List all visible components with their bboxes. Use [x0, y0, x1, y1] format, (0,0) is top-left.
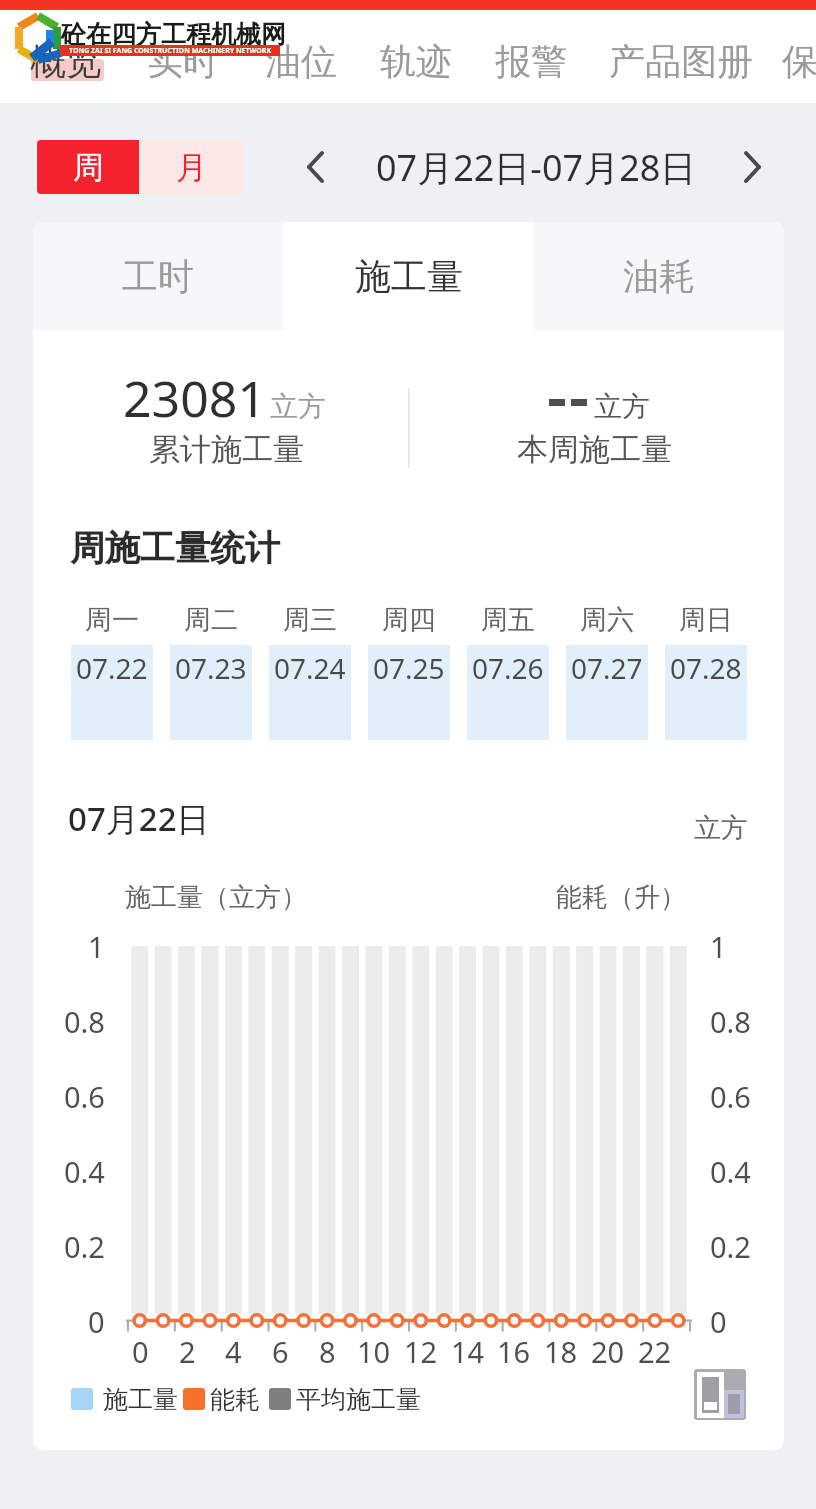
staticText: 能耗（升）: [556, 881, 686, 914]
staticText: 立方: [270, 389, 326, 424]
staticText: 立方: [594, 389, 650, 424]
staticText: 周施工量统计: [70, 526, 280, 570]
button[interactable]: [467, 645, 549, 740]
staticText: 施工量: [355, 254, 463, 299]
staticText: 23081: [123, 364, 266, 432]
staticText: 本周施工量: [517, 430, 672, 469]
staticText: 2: [179, 1332, 196, 1371]
button[interactable]: [269, 645, 351, 740]
staticText: 0.6: [64, 1077, 105, 1116]
staticText: 6: [272, 1332, 289, 1371]
staticText: 周: [73, 148, 104, 187]
staticText: 施工量: [103, 1384, 178, 1415]
button[interactable]: 周: [37, 140, 139, 194]
staticText: 8: [319, 1332, 336, 1371]
button[interactable]: [71, 645, 153, 740]
staticText: 0.4: [64, 1152, 105, 1191]
staticText: 07.24: [274, 649, 346, 687]
staticText: 立方: [694, 811, 748, 845]
staticText: 周三: [283, 603, 337, 637]
button[interactable]: 油耗: [534, 222, 784, 330]
staticText: 0.6: [710, 1077, 751, 1116]
staticText: 0.4: [710, 1152, 751, 1191]
staticText: 07.27: [571, 649, 643, 687]
staticText: 油耗: [623, 254, 695, 299]
staticText: 周五: [481, 603, 535, 637]
staticText: TONG ZAI SI FANG CONSTRUCTION MACHINERY …: [69, 46, 272, 56]
staticText: 10: [357, 1332, 391, 1371]
button[interactable]: [491, 40, 571, 82]
staticText: 20: [591, 1332, 625, 1371]
staticText: 概览: [30, 39, 102, 84]
staticText: 07月22日: [68, 796, 210, 841]
button[interactable]: [184, 1389, 284, 1415]
staticText: 1: [710, 927, 727, 966]
button[interactable]: [261, 40, 341, 82]
button[interactable]: 施工量: [283, 222, 534, 330]
button[interactable]: 月: [139, 140, 243, 194]
staticText: 16: [497, 1332, 531, 1371]
staticText: 周六: [580, 603, 634, 637]
staticText: 0.2: [64, 1227, 105, 1266]
staticText: 18: [544, 1332, 578, 1371]
button[interactable]: [302, 150, 330, 184]
staticText: 07.23: [175, 649, 247, 687]
staticText: 0.8: [710, 1002, 751, 1041]
staticText: 实时: [147, 39, 219, 84]
staticText: 1: [88, 927, 105, 966]
staticText: 0: [132, 1332, 149, 1371]
staticText: 砼在四方工程机械网: [61, 19, 286, 50]
staticText: 0.8: [64, 1002, 105, 1041]
staticText: 工时: [122, 254, 194, 299]
button[interactable]: 工时: [33, 222, 283, 330]
button[interactable]: [694, 1369, 746, 1420]
staticText: 产品图册: [609, 39, 753, 84]
staticText: 报警: [495, 39, 567, 84]
button[interactable]: [566, 645, 648, 740]
button[interactable]: [72, 1389, 202, 1415]
button[interactable]: [269, 1389, 449, 1415]
button[interactable]: [376, 40, 456, 82]
staticText: 14: [451, 1332, 485, 1371]
staticText: 07.26: [472, 649, 544, 687]
staticText: 月: [176, 148, 207, 187]
staticText: 4: [225, 1332, 242, 1371]
staticText: 施工量（立方）: [125, 881, 307, 914]
staticText: 保养: [782, 39, 816, 84]
staticText: 周四: [382, 603, 436, 637]
staticText: 07月22日-07月28日: [376, 143, 697, 192]
staticText: 周一: [85, 603, 139, 637]
staticText: 轨迹: [380, 39, 452, 84]
button[interactable]: [738, 150, 766, 184]
staticText: 周二: [184, 603, 238, 637]
staticText: 累计施工量: [149, 430, 304, 469]
staticText: 0.2: [710, 1227, 751, 1266]
staticText: 0: [88, 1302, 105, 1341]
staticText: 周日: [679, 603, 733, 637]
staticText: 07.22: [76, 649, 148, 687]
staticText: 油位: [265, 39, 337, 84]
button[interactable]: [641, 40, 721, 82]
button[interactable]: [782, 40, 816, 82]
button[interactable]: [143, 40, 223, 82]
staticText: 能耗: [210, 1384, 260, 1415]
staticText: 07.28: [670, 649, 742, 687]
staticText: 12: [404, 1332, 438, 1371]
button[interactable]: [368, 645, 450, 740]
button[interactable]: [28, 40, 108, 82]
button[interactable]: [170, 645, 252, 740]
staticText: 0: [710, 1302, 727, 1341]
staticText: 平均施工量: [296, 1384, 421, 1415]
staticText: 22: [638, 1332, 672, 1371]
staticText: 07.25: [373, 649, 445, 687]
button[interactable]: [665, 645, 747, 740]
